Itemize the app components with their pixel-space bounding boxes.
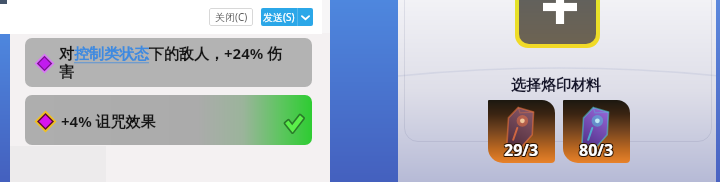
staticText: 80/3 — [580, 138, 615, 160]
staticText: 发送(S) — [263, 10, 295, 24]
staticText: 29/3 — [505, 139, 540, 161]
button[interactable]: 关闭(C) — [209, 8, 253, 26]
button[interactable]: 80/3 — [563, 100, 630, 163]
staticText: +4% 诅咒效果 — [61, 111, 156, 131]
staticText: 29/3 — [504, 139, 539, 161]
staticText: 对控制类状态下的敌人，+24% 伤害 — [59, 43, 287, 82]
button[interactable]: Add material — [515, 0, 600, 48]
staticText: 80/3 — [579, 139, 614, 161]
staticText: 80/3 — [578, 138, 613, 160]
staticText: 80/3 — [580, 140, 615, 162]
button[interactable]: 29/3 — [488, 100, 555, 163]
staticText: 选择烙印材料 — [511, 76, 601, 95]
staticText: 80/3 — [578, 140, 613, 162]
staticText: 80/3 — [580, 139, 615, 161]
staticText: 29/3 — [505, 138, 540, 160]
staticText: 29/3 — [504, 140, 539, 162]
staticText: 80/3 — [579, 138, 614, 160]
staticText: 29/3 — [505, 140, 540, 162]
staticText: 29/3 — [504, 138, 539, 160]
staticText: 80/3 — [578, 139, 613, 161]
button[interactable]: +4% 诅咒效果 — [25, 95, 312, 145]
staticText: 80/3 — [579, 140, 614, 162]
button[interactable]: 发送(S) — [261, 8, 313, 26]
staticText: 29/3 — [503, 138, 538, 160]
staticText: 29/3 — [503, 140, 538, 162]
staticText: 29/3 — [503, 139, 538, 161]
button[interactable]: 对控制类状态下的敌人，+24% 伤害 — [25, 38, 312, 87]
staticText: 关闭(C) — [215, 10, 248, 24]
